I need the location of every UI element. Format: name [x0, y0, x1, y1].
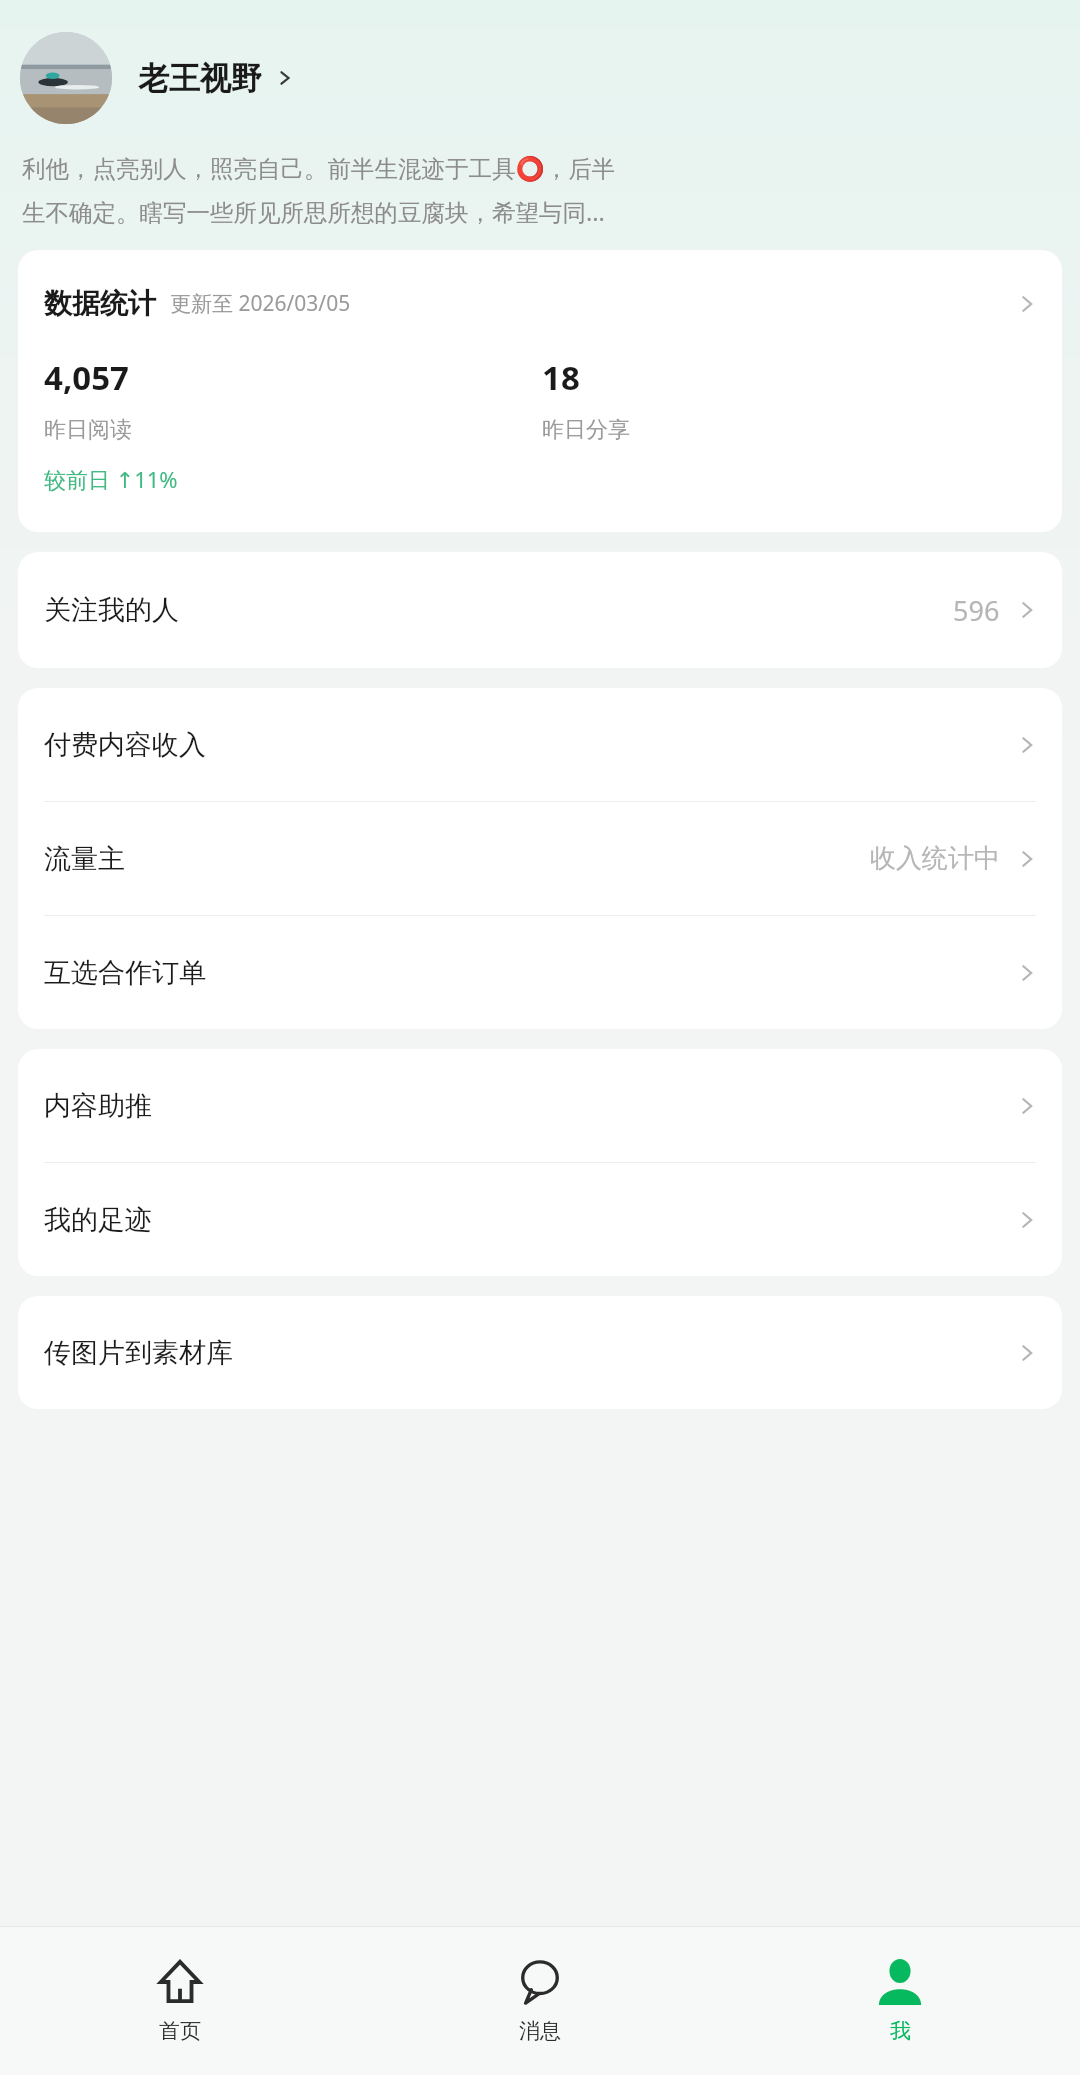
staticText: 数据统计: [44, 286, 156, 321]
button[interactable]: 首页: [0, 1927, 360, 2075]
button[interactable]: 内容助推: [18, 1049, 1062, 1162]
button[interactable]: 付费内容收入: [18, 688, 1062, 801]
staticText: 消息: [519, 2018, 561, 2044]
button[interactable]: 老王视野: [0, 32, 1080, 124]
staticText: 付费内容收入: [44, 728, 206, 762]
staticText: 利他，点亮别人，照亮自己。前半生混迹于工具⭕，后半: [22, 154, 616, 184]
staticText: 生不确定。瞎写一些所见所思所想的豆腐块，希望与同...: [22, 196, 605, 228]
staticText: 收入统计中: [870, 842, 1000, 875]
button[interactable]: 关注我的人: [18, 552, 1062, 668]
button[interactable]: 传图片到素材库: [18, 1296, 1062, 1409]
staticText: 更新至 2026/03/05: [170, 289, 351, 318]
staticText: 18: [542, 355, 580, 400]
staticText: 老王视野: [138, 59, 262, 98]
button[interactable]: 我的足迹: [18, 1163, 1062, 1276]
staticText: 较前日 ↑11%: [44, 464, 178, 494]
staticText: 我的足迹: [44, 1203, 152, 1237]
button[interactable]: 我: [720, 1927, 1080, 2075]
staticText: 596: [953, 592, 1000, 629]
button[interactable]: 流量主: [18, 802, 1062, 915]
staticText: 关注我的人: [44, 593, 179, 627]
staticText: 内容助推: [44, 1089, 152, 1123]
staticText: 首页: [159, 2018, 201, 2044]
button[interactable]: 消息: [360, 1927, 720, 2075]
staticText: 昨日分享: [542, 416, 630, 444]
staticText: 互选合作订单: [44, 956, 206, 990]
staticText: 昨日阅读: [44, 416, 132, 444]
staticText: 4,057: [44, 355, 129, 400]
button[interactable]: 数据统计: [18, 250, 1062, 329]
button[interactable]: 互选合作订单: [18, 916, 1062, 1029]
staticText: 我: [890, 2018, 911, 2044]
staticText: 传图片到素材库: [44, 1336, 233, 1370]
staticText: 流量主: [44, 842, 125, 876]
